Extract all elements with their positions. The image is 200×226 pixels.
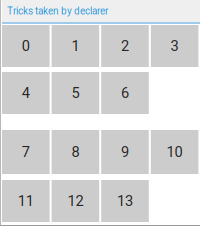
- staticText: 13: [117, 192, 133, 210]
- staticText: 10: [167, 143, 183, 161]
- button[interactable]: 12: [52, 180, 99, 222]
- staticText: 9: [121, 143, 129, 161]
- button[interactable]: 13: [101, 180, 149, 222]
- staticText: 11: [18, 192, 34, 210]
- button[interactable]: 7: [2, 130, 50, 174]
- button[interactable]: 1: [52, 25, 99, 67]
- button[interactable]: 5: [52, 72, 99, 114]
- staticText: Tricks taken by declarer: [7, 5, 108, 17]
- button[interactable]: 0: [2, 25, 50, 67]
- button[interactable]: 2: [101, 25, 149, 67]
- staticText: 12: [67, 192, 83, 210]
- staticText: 4: [22, 84, 30, 102]
- button[interactable]: 4: [2, 72, 50, 114]
- staticText: 2: [121, 37, 129, 55]
- button[interactable]: 11: [2, 180, 50, 222]
- staticText: 5: [71, 84, 79, 102]
- button[interactable]: 6: [101, 72, 149, 114]
- staticText: 1: [71, 37, 79, 55]
- button[interactable]: 3: [151, 25, 198, 67]
- staticText: 3: [171, 37, 179, 55]
- staticText: 0: [22, 37, 30, 55]
- button[interactable]: 8: [52, 130, 99, 174]
- button[interactable]: 10: [151, 130, 198, 174]
- staticText: 8: [71, 143, 79, 161]
- button[interactable]: 9: [101, 130, 149, 174]
- staticText: 7: [22, 143, 30, 161]
- staticText: 6: [121, 84, 129, 102]
